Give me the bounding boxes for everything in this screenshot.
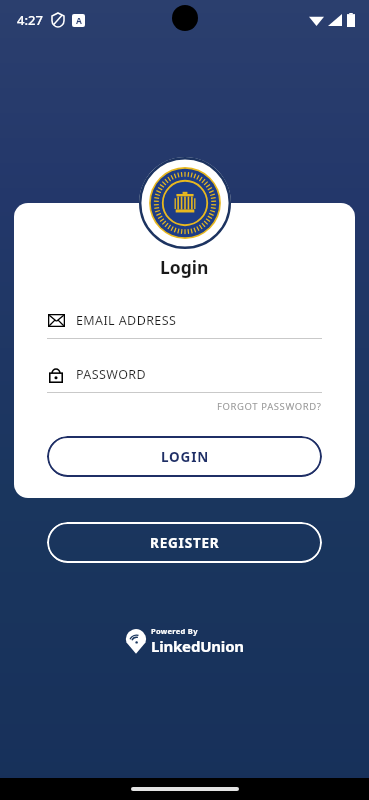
staticText: PASSWORD bbox=[76, 366, 147, 383]
button[interactable]: Email address bbox=[47, 311, 322, 339]
other: Password bbox=[47, 365, 65, 383]
staticText: A bbox=[76, 15, 82, 27]
button[interactable]: REGISTER bbox=[47, 522, 322, 563]
button[interactable]: Password bbox=[47, 365, 322, 393]
staticText: LinkedUnion bbox=[151, 636, 244, 656]
staticText: REGISTER bbox=[150, 534, 220, 552]
button[interactable]: LOGIN bbox=[47, 436, 322, 477]
staticText: Powered By bbox=[151, 626, 198, 636]
staticText: 4:27 bbox=[17, 11, 43, 29]
staticText: LOGIN bbox=[161, 448, 209, 466]
other: Email address bbox=[47, 311, 65, 329]
staticText: Login bbox=[160, 255, 209, 279]
staticText: FORGOT PASSWORD? bbox=[217, 400, 322, 413]
staticText: EMAIL ADDRESS bbox=[76, 312, 177, 329]
button[interactable]: FORGOT PASSWORD? bbox=[217, 400, 322, 413]
